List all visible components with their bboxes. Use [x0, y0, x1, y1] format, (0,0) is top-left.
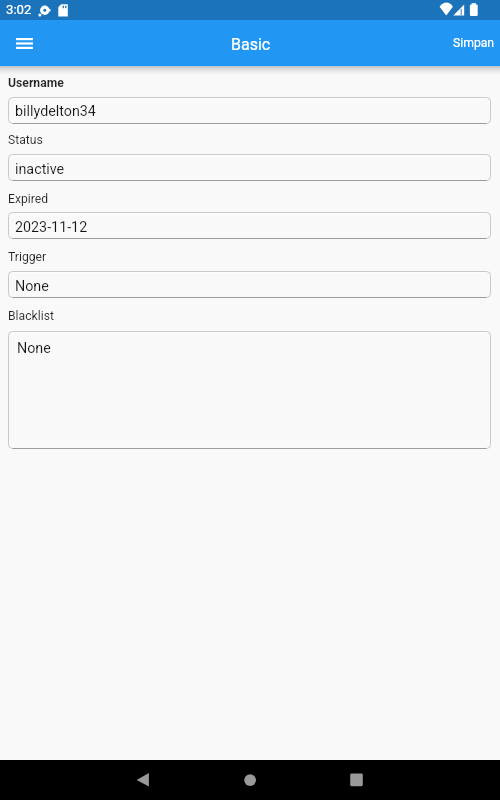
button[interactable]: Back	[113, 760, 173, 800]
staticText: Trigger	[8, 250, 47, 264]
button[interactable]: billydelton34	[8, 97, 491, 124]
staticText: Blacklist	[8, 309, 54, 323]
staticText: Status	[8, 133, 43, 147]
button[interactable]: inactive	[8, 154, 491, 181]
button[interactable]: None	[8, 331, 491, 449]
staticText: Simpan	[453, 36, 495, 50]
button[interactable]: None	[8, 271, 491, 298]
staticText: None	[17, 340, 51, 357]
staticText: 2023-11-12	[15, 219, 88, 236]
staticText: billydelton34	[15, 103, 96, 120]
button[interactable]: Open navigation menu	[4, 23, 44, 63]
staticText: None	[15, 278, 49, 295]
staticText: Username	[8, 76, 64, 90]
staticText: Basic	[231, 35, 271, 54]
button[interactable]: Recent apps	[326, 760, 386, 800]
staticText: inactive	[15, 161, 65, 178]
button[interactable]: Simpan	[443, 25, 500, 61]
staticText: Expired	[8, 192, 49, 206]
staticText: 3:02	[6, 2, 32, 17]
button[interactable]: 2023-11-12	[8, 212, 491, 239]
button[interactable]: Home	[220, 760, 280, 800]
